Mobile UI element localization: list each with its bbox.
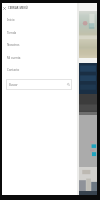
staticText: Mi cuenta [7, 56, 21, 60]
button[interactable]: Inicio [2, 14, 77, 26]
other: Buscar [67, 83, 70, 86]
button[interactable]: Buscar [6, 79, 72, 90]
button[interactable]: Cerrar menú [2, 4, 77, 12]
staticText: Tienda [7, 31, 17, 35]
staticText: Contacto [7, 68, 20, 72]
other: Cerrar menú [3, 7, 6, 10]
button[interactable]: Contacto [2, 64, 77, 76]
staticText: Inicio [7, 18, 15, 22]
staticText: Buscar [9, 83, 18, 87]
button[interactable]: Mi cuenta [2, 52, 77, 64]
staticText: CERRAR MENÚ [8, 6, 28, 10]
staticText: Nosotros [7, 43, 20, 47]
button[interactable]: Nosotros [2, 39, 77, 51]
button[interactable]: Tienda [2, 27, 77, 39]
